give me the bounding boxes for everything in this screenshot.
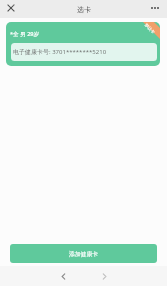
- button[interactable]: 添加健康卡: [10, 244, 157, 263]
- staticText: 默认卡: [144, 22, 156, 34]
- button[interactable]: More options: [147, 0, 163, 16]
- button[interactable]: Forward: [95, 267, 113, 285]
- staticText: 选卡: [77, 5, 91, 14]
- staticText: *全 男 29岁: [10, 30, 40, 38]
- staticText: 添加健康卡: [69, 250, 98, 257]
- button[interactable]: Back: [54, 267, 72, 285]
- button[interactable]: Close: [3, 0, 19, 16]
- button[interactable]: *全 男 29岁: [6, 22, 160, 66]
- staticText: 电子健康卡号: 3701********5210: [13, 48, 107, 56]
